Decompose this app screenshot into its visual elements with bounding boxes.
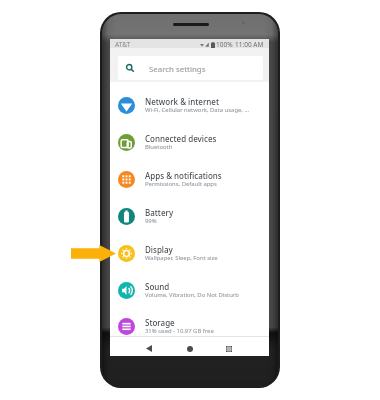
staticText: Apps & notifications [145,170,222,181]
button[interactable]: Home [181,342,199,355]
staticText: Volume, Vibration, Do Not Disturb [145,291,239,299]
staticText: 99% [145,217,157,225]
staticText: Search settings [149,64,206,75]
button[interactable]: Back [140,342,158,355]
staticText: Wi-Fi, Cellular network, Data usage, … [145,106,250,114]
staticText: AT&T [115,40,131,49]
button[interactable]: Recent apps [220,342,238,355]
staticText: Connected devices [145,133,217,144]
staticText: Bluetooth [145,143,173,151]
staticText: 100% [216,40,233,49]
staticText: Permissions, Default apps [145,180,217,188]
button[interactable]: Network & internet [110,87,269,124]
staticText: Network & internet [145,96,220,107]
button[interactable]: Apps & notifications [110,161,269,198]
button[interactable]: Search settings [118,56,263,80]
button[interactable]: Storage [110,308,269,345]
other: Pointer to Display [71,245,116,262]
staticText: Battery [145,207,174,218]
button[interactable]: Connected devices [110,124,269,161]
staticText: 31% used - 10.97 GB free [145,327,214,335]
button[interactable]: Sound [110,272,269,309]
staticText: Wallpaper, Sleep, Font size [145,254,218,262]
staticText: Sound [145,281,170,292]
staticText: 11:00 AM [235,40,264,49]
button[interactable]: Battery [110,198,269,235]
staticText: Storage [145,317,175,328]
staticText: Display [145,244,173,255]
button[interactable]: Display [110,235,269,272]
